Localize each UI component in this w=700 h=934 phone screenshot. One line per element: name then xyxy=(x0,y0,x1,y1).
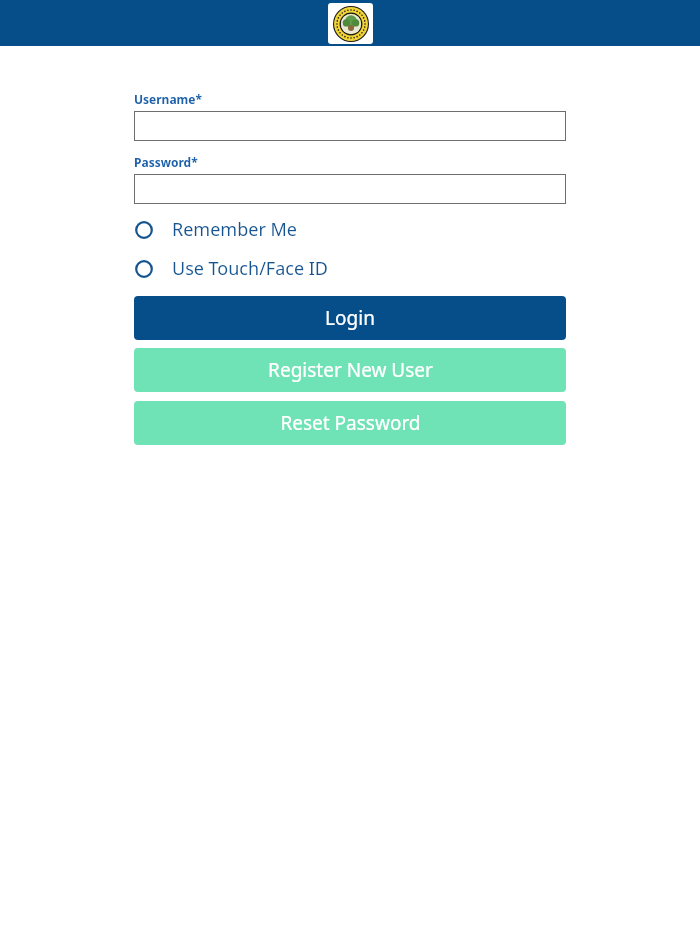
staticText: Use Touch/Face ID xyxy=(172,256,328,281)
staticText: Username* xyxy=(134,91,202,107)
button[interactable]: Reset Password xyxy=(134,401,566,445)
button[interactable]: Register New User xyxy=(134,348,566,392)
staticText: Remember Me xyxy=(172,217,297,242)
button[interactable]: Text input xyxy=(134,174,566,204)
button[interactable]: Login xyxy=(134,296,566,340)
button[interactable]: Use Touch/Face ID xyxy=(134,251,566,286)
staticText: Login xyxy=(325,305,375,331)
button[interactable]: Moore County NC seal xyxy=(328,3,373,44)
staticText: Register New User xyxy=(268,357,433,383)
staticText: Password* xyxy=(134,154,198,170)
button[interactable]: Remember Me xyxy=(134,212,566,247)
button[interactable]: Text input xyxy=(134,111,566,141)
staticText: Reset Password xyxy=(280,410,421,436)
